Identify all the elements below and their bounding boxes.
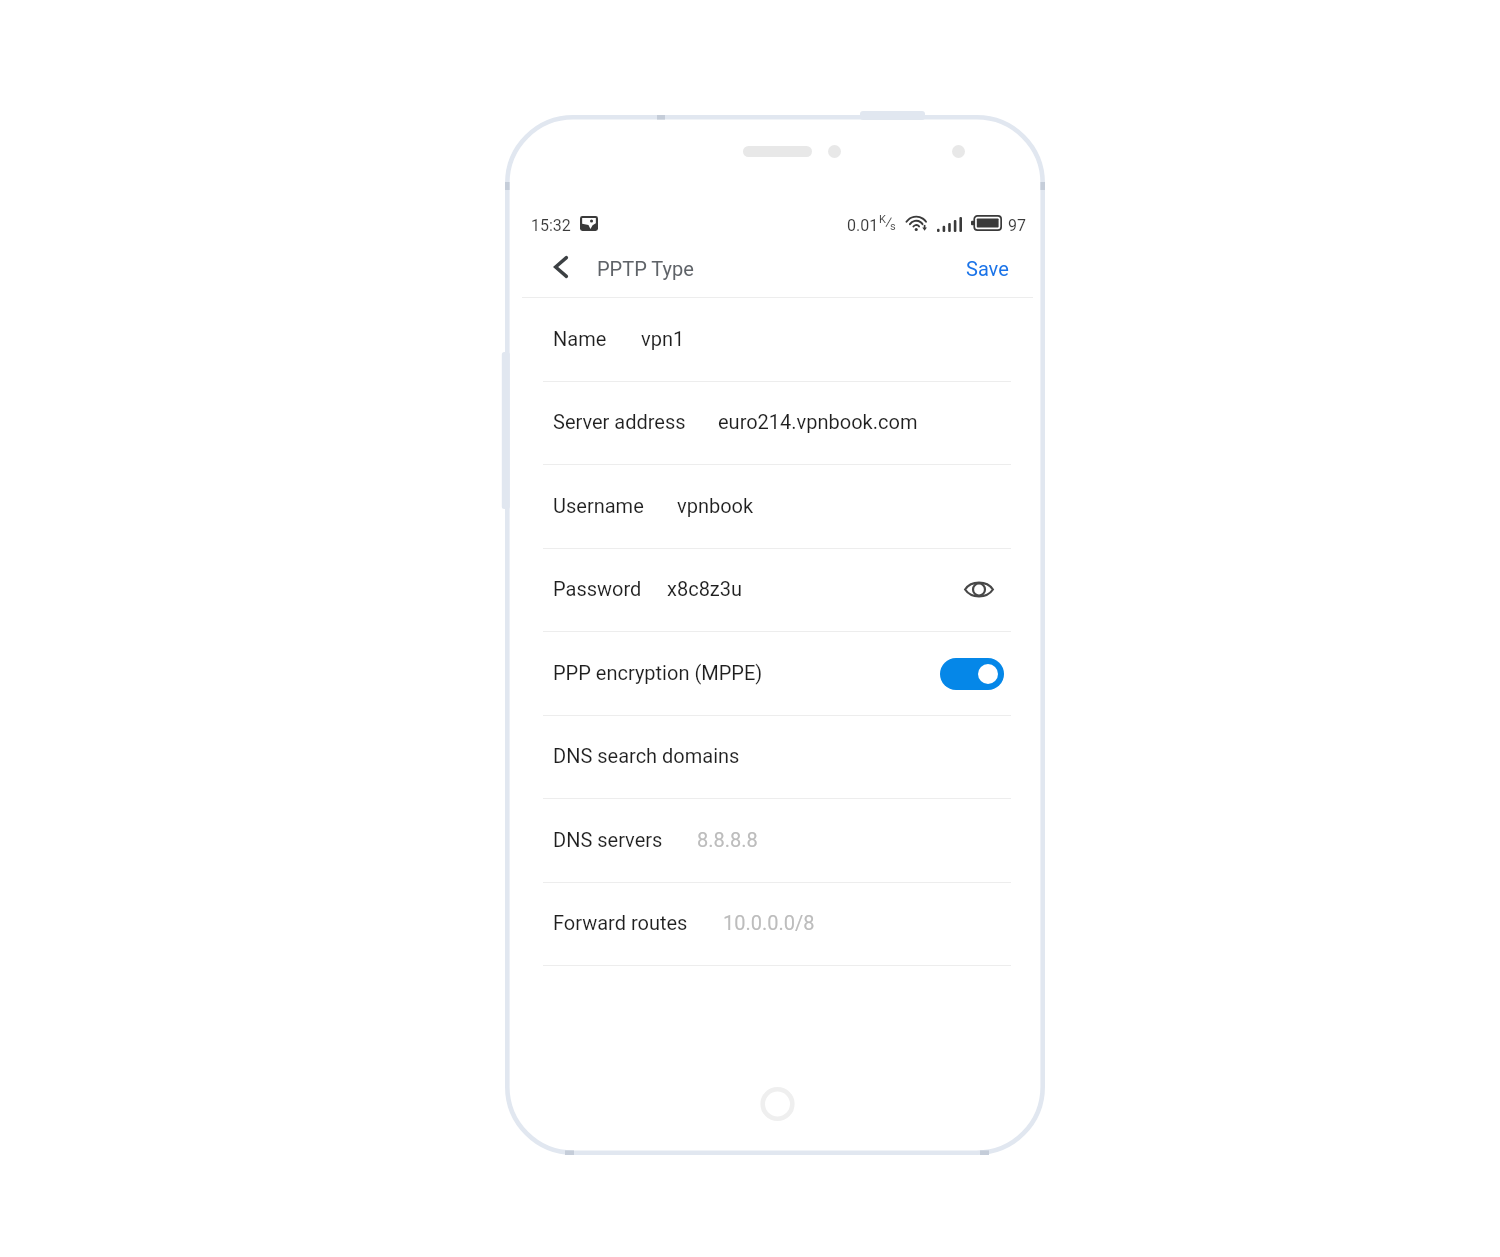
staticText: K (879, 213, 886, 226)
button[interactable]: Forward routes (505, 883, 1045, 966)
staticText: PPTP Type (597, 257, 694, 280)
staticText: DNS search domains (553, 744, 740, 767)
button[interactable]: DNS search domains (505, 716, 1045, 799)
staticText: s (890, 220, 896, 233)
staticText: DNS servers (553, 828, 663, 851)
staticText: Name (553, 327, 607, 350)
button[interactable]: Password (505, 549, 1045, 632)
button[interactable]: Save (966, 244, 1500, 292)
staticText: x8c8z3u (667, 577, 743, 600)
button[interactable]: Show password (957, 567, 1001, 611)
button[interactable]: Back (541, 247, 581, 287)
staticText: 15:32 (531, 216, 571, 235)
button[interactable]: Username (505, 465, 1045, 549)
staticText: Username (553, 494, 644, 517)
staticText: Forward routes (553, 911, 688, 934)
staticText: 97 (1008, 216, 1026, 235)
button[interactable]: Server address (505, 382, 1045, 465)
staticText: euro214.vpnbook.com (718, 410, 918, 433)
staticText: ⁄ (885, 213, 893, 232)
staticText: 10.0.0.0/8 (723, 911, 815, 934)
button[interactable]: PPP encryption (MPPE) (505, 632, 1045, 716)
staticText: 8.8.8.8 (697, 828, 758, 851)
staticText: Password (553, 577, 642, 600)
staticText: PPP encryption (MPPE) (553, 661, 763, 684)
staticText: vpn1 (641, 327, 685, 350)
staticText: Save (966, 257, 1009, 280)
staticText: 0.01 (847, 216, 879, 235)
button[interactable]: Name (505, 298, 1045, 382)
button[interactable]: DNS servers (505, 799, 1045, 883)
staticText: Server address (553, 410, 686, 433)
staticText: vpnbook (677, 494, 754, 517)
button[interactable]: PPP encryption toggle (940, 658, 1004, 690)
